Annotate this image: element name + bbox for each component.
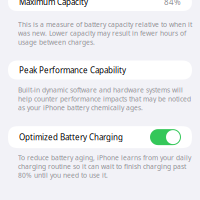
staticText: 84% xyxy=(164,0,181,7)
button[interactable]: Optimized Battery Charging xyxy=(150,129,181,145)
staticText: Peak Performance Capability xyxy=(19,65,126,75)
staticText: Optimized Battery Charging xyxy=(19,132,123,142)
button[interactable]: Maximum Capacity xyxy=(0,0,200,11)
button[interactable]: Peak Performance Capability xyxy=(0,61,200,80)
staticText: To reduce battery aging, iPhone learns f… xyxy=(18,153,191,180)
staticText: Maximum Capacity xyxy=(19,0,88,7)
staticText: This is a measure of battery capacity re… xyxy=(18,20,192,47)
staticText: Built-in dynamic software and hardware s… xyxy=(18,86,191,112)
